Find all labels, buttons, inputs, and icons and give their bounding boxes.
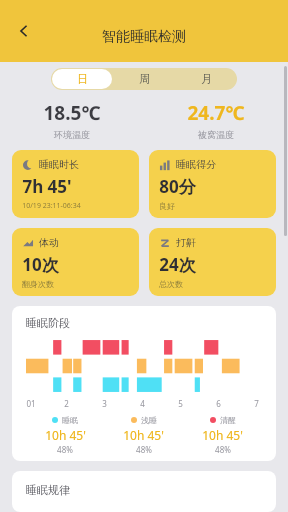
staticText: 7 [254, 398, 259, 409]
staticText: 被窝温度 [198, 129, 234, 140]
staticText: 打鼾 [176, 236, 196, 249]
button[interactable]: 月 [175, 68, 237, 90]
staticText: 48% [57, 444, 73, 455]
staticText: 01 [26, 398, 36, 409]
staticText: 10/19 23:11-06:34 [22, 201, 81, 211]
staticText: 24.7℃ [187, 100, 245, 126]
staticText: 4 [140, 398, 145, 409]
staticText: 良好 [159, 201, 175, 211]
staticText: 翻身次数 [22, 279, 54, 289]
staticText: 日 [77, 72, 88, 86]
staticText: 10h 45' [45, 427, 86, 443]
staticText: 浅睡 [141, 415, 157, 425]
button[interactable]: 体动 [12, 228, 139, 296]
staticText: 24次 [159, 253, 196, 276]
staticText: 10h 45' [123, 427, 164, 443]
staticText: 48% [136, 444, 152, 455]
staticText: 5 [178, 398, 183, 409]
staticText: 10h 45' [202, 427, 243, 443]
button[interactable]: 睡眠得分 [149, 150, 276, 218]
staticText: 总次数 [159, 279, 183, 289]
button[interactable]: 睡眠阶段 [12, 306, 276, 461]
staticText: 体动 [39, 236, 59, 249]
staticText: 2 [64, 398, 69, 409]
staticText: 周 [139, 72, 150, 86]
staticText: 10次 [22, 253, 59, 276]
staticText: 3 [102, 398, 107, 409]
staticText: 6 [216, 398, 221, 409]
button[interactable]: 打鼾 [149, 228, 276, 296]
button[interactable]: 日 [52, 69, 112, 89]
staticText: 睡眠阶段 [26, 316, 70, 330]
staticText: 睡眠规律 [26, 483, 70, 497]
button[interactable]: Back [4, 11, 44, 51]
staticText: 环境温度 [54, 129, 90, 140]
staticText: 睡眠 [62, 415, 78, 425]
staticText: 睡眠时长 [39, 158, 79, 171]
staticText: 月 [201, 72, 212, 86]
staticText: 清醒 [220, 415, 236, 425]
button[interactable]: 睡眠规律 [12, 471, 276, 512]
staticText: 80分 [159, 175, 196, 198]
staticText: 智能睡眠检测 [102, 28, 186, 46]
staticText: 18.5℃ [43, 100, 101, 126]
staticText: 7h 45' [22, 175, 72, 198]
staticText: 48% [215, 444, 231, 455]
staticText: 睡眠得分 [176, 158, 216, 171]
button[interactable]: 睡眠时长 [12, 150, 139, 218]
button[interactable]: 周 [113, 68, 175, 90]
